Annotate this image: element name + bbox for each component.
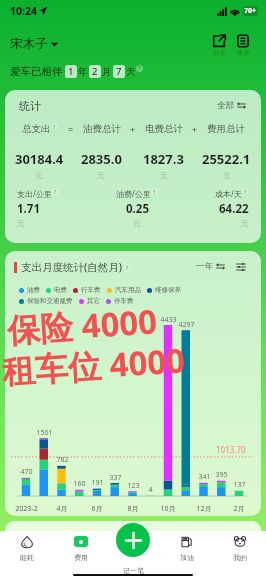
staticText: 支出月度统计(自然月) (21, 260, 123, 274)
button[interactable]: 图表设置 (236, 262, 246, 272)
button[interactable]: 加油 (160, 531, 213, 578)
staticText: 记一笔 (123, 566, 144, 575)
staticText: 油费 (27, 286, 40, 294)
staticText: ? (53, 124, 56, 130)
staticText: 分享 (213, 49, 226, 57)
staticText: 我的 (233, 553, 247, 562)
staticText: 1013.70 (216, 444, 246, 455)
staticText: 电费 (54, 286, 67, 294)
staticText: ? (244, 189, 247, 195)
staticText: 4 (148, 485, 153, 495)
staticText: 341 (198, 472, 211, 482)
staticText: 30184.4 (15, 150, 64, 168)
staticText: 2023-2 (15, 504, 38, 514)
staticText: 2 (92, 65, 98, 78)
staticText: 160 (73, 479, 86, 489)
staticText: 6月 (91, 504, 103, 514)
staticText: ? (153, 189, 156, 195)
staticText: ? (54, 189, 57, 195)
staticText: 电费总计 (145, 123, 183, 135)
button[interactable]: 宋木子 (10, 36, 58, 52)
staticText: 元 (17, 219, 25, 228)
button[interactable]: 全部 (217, 100, 246, 111)
button[interactable]: 一年 (196, 261, 225, 272)
button[interactable]: 能耗 (0, 531, 54, 578)
staticText: 油费总计 (83, 123, 121, 135)
staticText: 能耗 (20, 553, 34, 562)
button[interactable]: 账单 (236, 34, 250, 57)
staticText: 元 (133, 219, 141, 228)
staticText: 25522.1 (202, 150, 251, 168)
staticText: 月 (102, 66, 112, 78)
staticText: 2835.0 (81, 150, 122, 168)
staticText: 4月 (56, 504, 68, 514)
staticText: 年 (78, 66, 88, 78)
staticText: 维修保养 (155, 286, 181, 294)
staticText: 64.22 (219, 201, 249, 217)
staticText: 0.25 (126, 201, 149, 217)
staticText: 成本/天 (215, 188, 242, 199)
button[interactable]: 分享 (212, 34, 226, 57)
staticText: 加油 (180, 553, 194, 562)
staticText: 123 (127, 481, 140, 491)
staticText: 1 (68, 65, 74, 78)
staticText: 油费/公里 (116, 188, 151, 199)
staticText: 470 (20, 467, 33, 477)
staticText: 宋木子 (10, 36, 48, 52)
staticText: 保险 4000 (6, 298, 159, 352)
staticText: 8月 (127, 504, 139, 514)
staticText: 费用 (74, 553, 88, 562)
staticText: 元 (97, 171, 105, 180)
staticText: 停车费 (114, 297, 134, 305)
button[interactable]: 我的 (213, 531, 266, 578)
staticText: 395 (215, 470, 228, 480)
staticText: 其它 (87, 297, 100, 305)
staticText: 租车位 4000 (1, 337, 187, 393)
staticText: 费用总计 (207, 123, 245, 135)
staticText: ? (126, 265, 129, 271)
staticText: 7 (116, 65, 122, 78)
staticText: + (130, 123, 136, 135)
staticText: 1827.3 (143, 150, 184, 168)
staticText: 10月 (160, 504, 176, 514)
staticText: ? (138, 65, 141, 72)
staticText: 4433 (160, 315, 177, 325)
staticText: 12月 (196, 504, 212, 514)
staticText: 天 (126, 66, 136, 78)
staticText: 70+ (244, 6, 257, 16)
staticText: + (192, 123, 198, 135)
staticText: 爱车已相伴 (10, 65, 63, 78)
staticText: 137 (233, 480, 246, 490)
staticText: 10:24 (10, 4, 37, 18)
staticText: 1501 (36, 428, 53, 438)
staticText: 汽车用品 (115, 286, 141, 294)
staticText: 一年 (196, 261, 213, 272)
staticText: 保险和交通规费 (27, 297, 73, 305)
staticText: 统计 (19, 99, 41, 113)
staticText: 支出/公里 (17, 188, 52, 199)
staticText: 782 (56, 455, 69, 465)
button[interactable]: 记一笔 (116, 523, 150, 557)
staticText: = (68, 123, 74, 135)
staticText: 元 (241, 219, 249, 228)
button[interactable]: 费用 (54, 531, 107, 578)
staticText: 4297 (178, 320, 195, 330)
staticText: 行车费 (81, 286, 101, 294)
staticText: 191 (91, 478, 104, 488)
staticText: 总支出 (22, 123, 51, 135)
staticText: 1.71 (17, 201, 40, 217)
staticText: 2月 (233, 504, 245, 514)
staticText: 全部 (217, 100, 234, 111)
staticText: 元 (35, 171, 43, 180)
staticText: 337 (109, 473, 122, 483)
staticText: 账单 (237, 49, 250, 57)
staticText: 元 (160, 171, 168, 180)
staticText: 元 (223, 171, 231, 180)
